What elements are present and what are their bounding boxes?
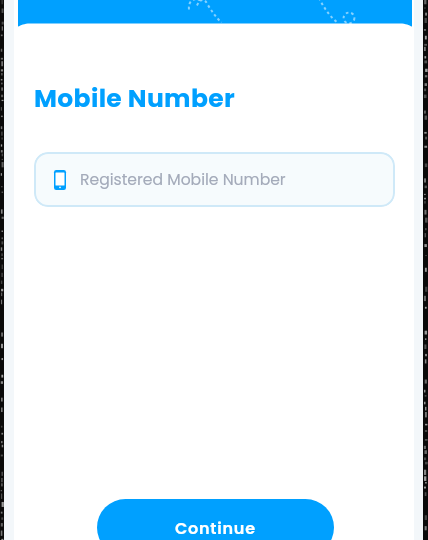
staticText: Continue	[175, 517, 256, 539]
staticText: Registered Mobile Number	[80, 169, 286, 191]
button[interactable]: Continue	[97, 499, 334, 540]
other: Mobile phone	[54, 170, 66, 190]
button[interactable]: Mobile phone	[34, 152, 395, 207]
staticText: Mobile Number	[34, 81, 236, 116]
